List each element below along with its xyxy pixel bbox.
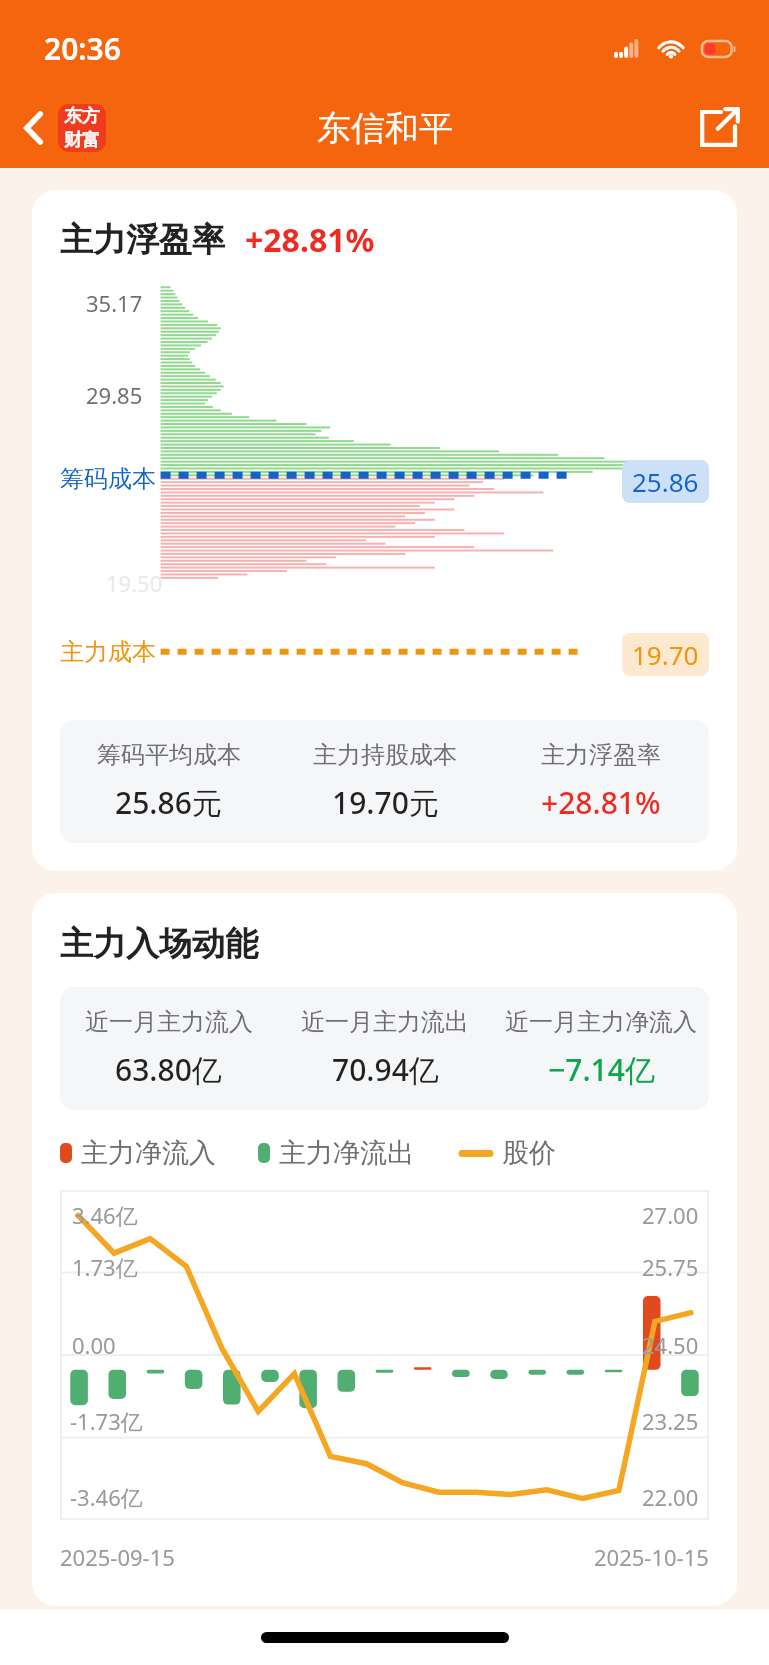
staticText: 25.86元: [115, 782, 222, 823]
staticText: 35.17: [86, 288, 143, 318]
staticText: 29.85: [86, 380, 143, 410]
staticText: 近一月主力流出: [301, 1007, 469, 1037]
staticText: 0.00: [72, 1330, 116, 1360]
staticText: 主力成本: [60, 637, 156, 667]
staticText: 2025-09-15: [60, 1542, 175, 1572]
staticText: 主力净流出: [279, 1136, 414, 1170]
button[interactable]: 主力入场动能: [32, 893, 737, 1606]
staticText: 19.70: [632, 637, 699, 672]
staticText: 筹码成本: [60, 464, 156, 494]
staticText: −7.14亿: [548, 1049, 655, 1090]
button[interactable]: Share: [691, 100, 747, 156]
button[interactable]: Back: [8, 102, 60, 154]
staticText: 63.80亿: [115, 1049, 222, 1090]
staticText: 主力入场动能: [60, 923, 258, 965]
button[interactable]: East Money: [58, 104, 106, 152]
staticText: 23.25: [642, 1406, 699, 1436]
staticText: 27.00: [642, 1200, 699, 1230]
staticText: 25.75: [642, 1252, 699, 1282]
button[interactable]: 主力浮盈率: [32, 190, 737, 871]
staticText: 主力浮盈率: [541, 740, 661, 770]
staticText: 财富: [64, 129, 100, 152]
staticText: 主力净流入: [81, 1136, 216, 1170]
staticText: 主力浮盈率: [60, 219, 225, 261]
staticText: 东信和平: [317, 107, 453, 150]
staticText: 2025-10-15: [594, 1542, 709, 1572]
staticText: 20:36: [44, 28, 121, 69]
staticText: +28.81%: [245, 218, 375, 262]
staticText: 25.86: [632, 464, 699, 499]
staticText: 19.70元: [332, 782, 439, 823]
staticText: 主力持股成本: [313, 740, 457, 770]
staticText: -3.46亿: [70, 1482, 143, 1512]
staticText: 70.94亿: [332, 1049, 439, 1090]
staticText: 股价: [502, 1136, 556, 1170]
staticText: 22.00: [642, 1482, 699, 1512]
staticText: 东方: [64, 105, 100, 128]
staticText: 近一月主力流入: [85, 1007, 253, 1037]
staticText: 3.46亿: [72, 1200, 138, 1230]
staticText: -1.73亿: [70, 1406, 143, 1436]
staticText: +28.81%: [541, 782, 661, 823]
staticText: 24.50: [642, 1330, 699, 1360]
staticText: 19.50: [106, 568, 163, 598]
staticText: 筹码平均成本: [97, 740, 241, 770]
staticText: 近一月主力净流入: [505, 1007, 697, 1037]
staticText: 1.73亿: [72, 1252, 138, 1282]
